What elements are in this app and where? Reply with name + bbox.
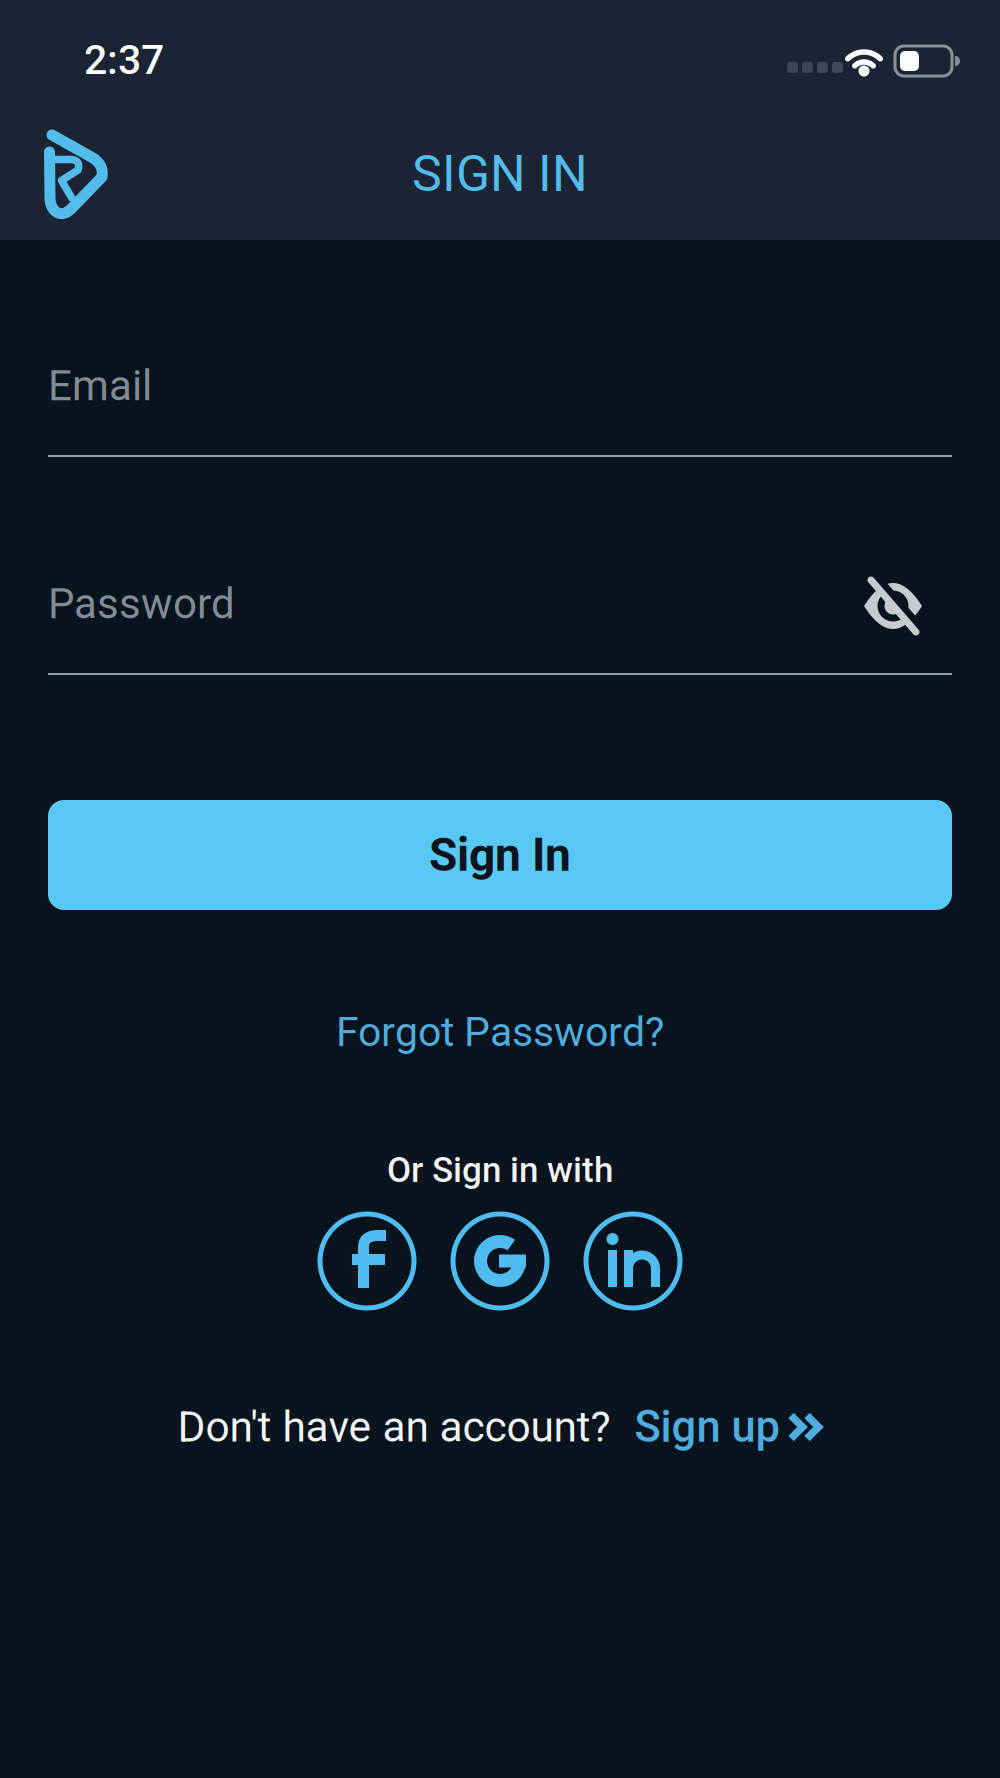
button[interactable]	[851, 564, 935, 648]
button[interactable]	[583, 1211, 683, 1311]
button[interactable]	[48, 354, 952, 458]
button[interactable]	[450, 1211, 550, 1311]
staticText: Sign up	[634, 1401, 779, 1452]
staticText: SIGN IN	[412, 145, 588, 203]
staticText: Or Sign in with	[387, 1149, 613, 1190]
button[interactable]: Forgot Password?	[336, 1008, 664, 1056]
button[interactable]: Sign up	[634, 1401, 822, 1452]
button[interactable]	[48, 572, 952, 676]
staticText: Forgot Password?	[336, 1008, 664, 1056]
staticText: Don't have an account?	[177, 1402, 610, 1452]
staticText: 2:37	[84, 36, 164, 84]
button[interactable]	[317, 1211, 417, 1311]
button[interactable]: Sign In	[48, 800, 952, 910]
staticText: Email	[48, 361, 152, 411]
staticText: Password	[48, 579, 235, 629]
staticText: Sign In	[429, 828, 571, 882]
button[interactable]	[34, 120, 124, 230]
